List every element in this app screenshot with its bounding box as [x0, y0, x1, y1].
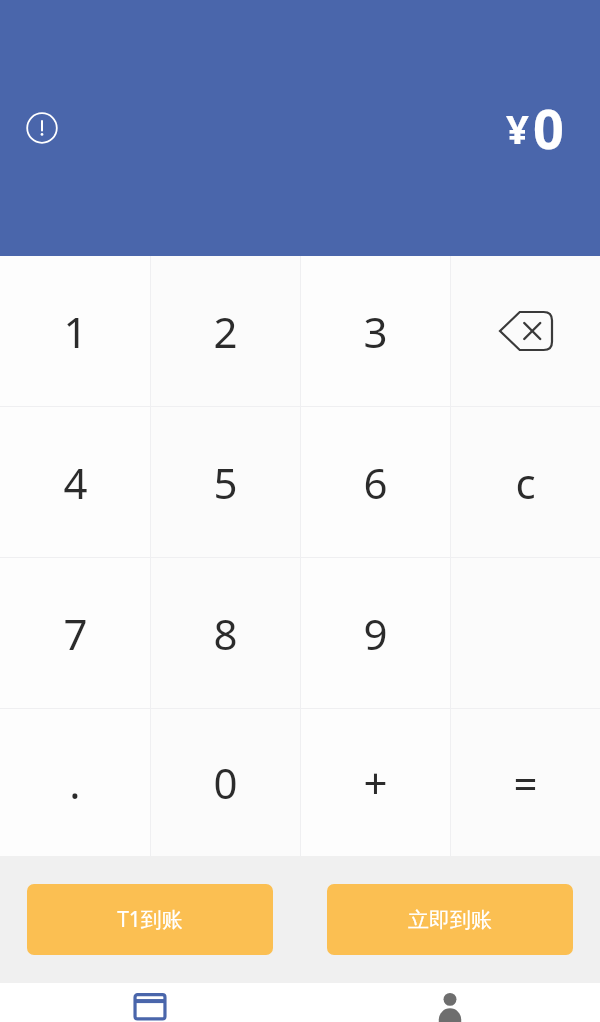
staticText: 立即到账 [408, 907, 492, 933]
button[interactable]: c [451, 407, 600, 557]
staticText: T1到账 [117, 905, 183, 934]
staticText: 3 [363, 303, 388, 360]
button[interactable]: 6 [301, 407, 450, 557]
staticText: 1 [63, 303, 88, 360]
button[interactable]: = [451, 709, 600, 856]
staticText: 4 [63, 454, 88, 511]
button[interactable]: 9 [301, 558, 450, 708]
button[interactable]: Cards [0, 983, 300, 1022]
button[interactable]: Backspace [451, 256, 600, 406]
button[interactable]: 0 [151, 709, 300, 856]
button[interactable]: T1到账 [27, 884, 273, 955]
staticText: 0 [213, 754, 238, 811]
staticText: 8 [213, 605, 238, 662]
button[interactable]: 3 [301, 256, 450, 406]
button[interactable]: 5 [151, 407, 300, 557]
button[interactable]: 2 [151, 256, 300, 406]
staticText: = [513, 754, 538, 811]
button[interactable]: 1 [0, 256, 150, 406]
staticText: 0 [533, 91, 564, 165]
staticText: . [69, 754, 81, 811]
staticText: 2 [213, 303, 238, 360]
button[interactable]: 7 [0, 558, 150, 708]
button[interactable]: . [0, 709, 150, 856]
staticText: 9 [363, 605, 388, 662]
button[interactable]: Information [18, 104, 66, 152]
button[interactable]: 4 [0, 407, 150, 557]
staticText: c [515, 454, 536, 511]
button[interactable]: 立即到账 [327, 884, 573, 955]
staticText: + [363, 754, 388, 811]
button[interactable]: 8 [151, 558, 300, 708]
staticText: 7 [63, 605, 88, 662]
button[interactable]: + [301, 709, 450, 856]
staticText: 5 [213, 454, 238, 511]
button[interactable]: Profile [300, 983, 600, 1022]
staticText: 6 [363, 454, 388, 511]
staticText: ¥ [506, 101, 529, 155]
